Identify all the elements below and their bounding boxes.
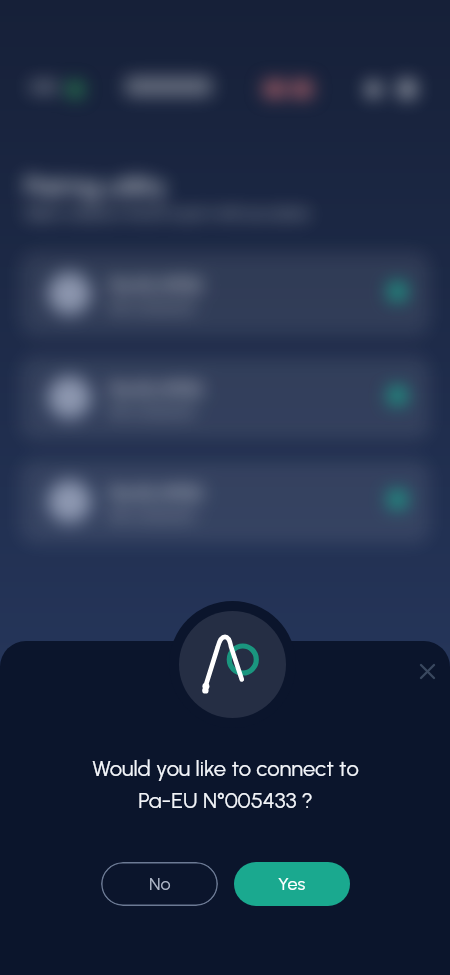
- staticText: Pairing utility: [25, 170, 167, 201]
- staticText: Would you like to connect to: [92, 755, 359, 781]
- staticText: Select a device in the list to pair it w…: [25, 206, 309, 222]
- staticText: Pa-EU N°00: [110, 482, 202, 504]
- button[interactable]: Close: [410, 654, 444, 688]
- button[interactable]: Yes: [234, 862, 350, 906]
- staticText: Yes: [278, 873, 306, 895]
- staticText: Pa-EU N°00: [110, 274, 202, 296]
- staticText: Pa-EU N°00: [110, 378, 202, 400]
- button[interactable]: No: [101, 862, 218, 906]
- staticText: Pa-EU N°005433 ?: [138, 787, 313, 813]
- staticText: No: [149, 873, 171, 895]
